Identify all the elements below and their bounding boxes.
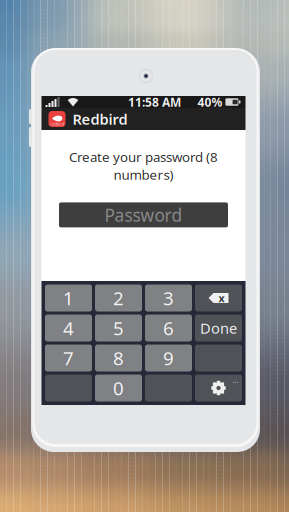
button[interactable]: 5 (95, 314, 142, 341)
staticText: 4 (63, 316, 74, 340)
staticText: 40% (197, 94, 222, 110)
staticText: 8 (113, 346, 124, 370)
staticText: 0 (113, 376, 124, 400)
staticText: 3 (163, 286, 174, 310)
staticText: x (218, 291, 224, 305)
staticText: 6 (163, 316, 174, 340)
staticText: ... (232, 375, 238, 385)
button[interactable]: 1 (45, 284, 92, 311)
staticText: 9 (163, 346, 174, 370)
button[interactable]: Settings (195, 374, 242, 401)
staticText: Redbird (72, 109, 127, 129)
staticText: 5 (113, 316, 124, 340)
button[interactable]: 4 (45, 314, 92, 341)
staticText: 7 (63, 346, 74, 370)
staticText: numbers) (113, 166, 173, 183)
button[interactable]: 8 (95, 344, 142, 371)
button[interactable]: Password (59, 202, 228, 227)
button[interactable]: 9 (145, 344, 192, 371)
button[interactable]: 2 (95, 284, 142, 311)
staticText: Create your password (8 (69, 148, 218, 166)
button[interactable]: 0 (95, 374, 142, 401)
staticText: 11:58 AM (128, 94, 181, 110)
staticText: Password (104, 203, 182, 226)
staticText: Done (200, 318, 237, 338)
button[interactable]: redbird (41, 108, 245, 130)
button[interactable]: Backspace (195, 284, 242, 311)
button[interactable]: 7 (45, 344, 92, 371)
staticText: 1 (63, 286, 74, 310)
button[interactable]: 3 (145, 284, 192, 311)
button[interactable]: 6 (145, 314, 192, 341)
staticText: redbird (50, 121, 63, 127)
button[interactable]: Done (195, 314, 242, 341)
staticText: 2 (113, 286, 124, 310)
